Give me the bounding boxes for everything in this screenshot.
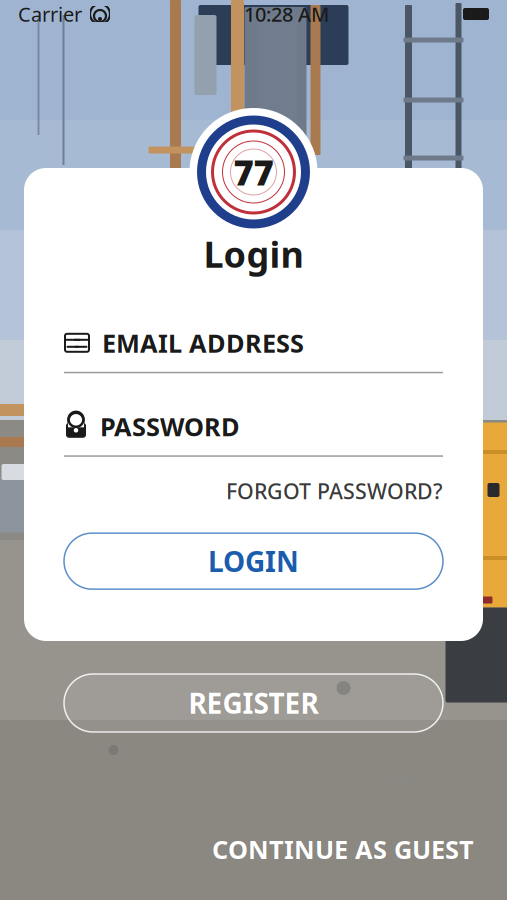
staticText: 77 xyxy=(233,149,273,195)
staticText: CONTINUE AS GUEST xyxy=(212,832,474,866)
staticText: FORGOT PASSWORD? xyxy=(226,477,443,505)
staticText: EMAIL ADDRESS xyxy=(102,326,304,360)
staticText: PASSWORD xyxy=(100,409,240,443)
staticText: Login xyxy=(203,230,303,278)
button[interactable]: REGISTER xyxy=(64,674,443,732)
staticText: Carrier xyxy=(18,1,82,27)
staticText: LOGIN xyxy=(208,542,299,580)
button[interactable]: FORGOT PASSWORD? xyxy=(226,471,443,511)
button[interactable]: CONTINUE AS GUEST xyxy=(212,824,474,874)
staticText: 10:28 AM xyxy=(244,1,329,27)
button[interactable]: LOGIN xyxy=(64,533,443,589)
staticText: REGISTER xyxy=(188,684,318,722)
